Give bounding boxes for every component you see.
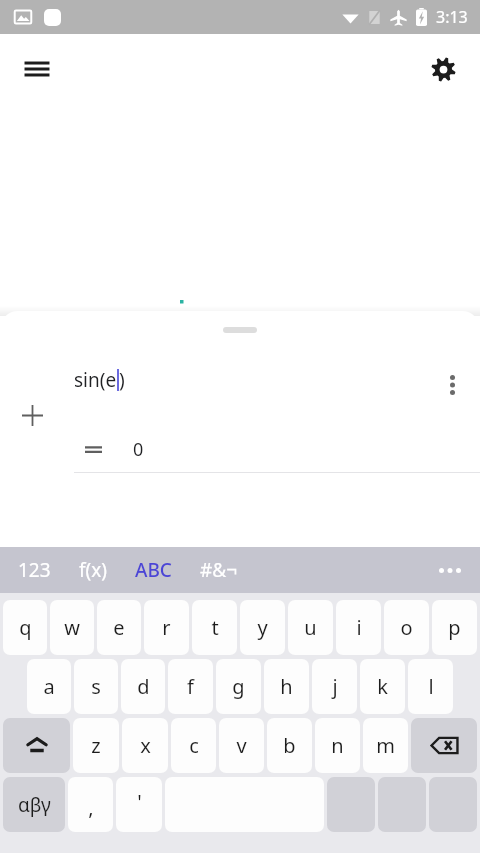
button[interactable]: ' [116,777,162,832]
staticText: m [376,732,395,759]
staticText: h [280,673,293,700]
button[interactable]: l [408,659,453,714]
button[interactable]: v [219,718,264,773]
button[interactable]: a [27,659,71,714]
staticText: s [91,673,101,700]
button[interactable]: c [171,718,216,773]
button[interactable]: k [360,659,405,714]
staticText: z [91,732,101,759]
staticText: j [332,673,338,700]
button[interactable]: r [144,600,189,655]
staticText: b [283,732,296,759]
staticText: c [189,732,199,759]
button[interactable]: ABC [127,547,180,593]
staticText: x [140,732,151,759]
staticText: 123 [18,557,51,583]
staticText: l [428,673,434,700]
staticText: o [400,614,413,641]
button[interactable]: y [240,600,285,655]
staticText: p [448,614,461,641]
button[interactable]: d [121,659,165,714]
button[interactable]: Settings [420,46,466,92]
button[interactable]: sin(e [74,367,125,393]
button[interactable]: w [50,600,94,655]
button[interactable]: n [315,718,360,773]
staticText: v [236,732,247,759]
staticText: e [113,614,125,641]
staticText: sin(e [74,367,117,393]
staticText: i [356,614,362,641]
button[interactable]: Open navigation menu [14,46,60,92]
button[interactable]: f [168,659,213,714]
button[interactable]: q [3,600,47,655]
button[interactable]: More keyboard options [428,548,472,592]
staticText: k [377,673,388,700]
button[interactable]: m [363,718,408,773]
staticText: q [19,614,32,641]
staticText: f [187,673,194,700]
staticText: 0 [133,437,144,462]
button[interactable]: j [312,659,357,714]
staticText: a [43,673,55,700]
button[interactable]: f(x) [71,547,115,593]
staticText: ABC [135,557,172,583]
staticText: ) [119,367,125,393]
staticText: u [304,614,317,641]
button[interactable]: g [216,659,261,714]
button[interactable]: h [264,659,309,714]
staticText: r [162,614,171,641]
button[interactable]: z [73,718,119,773]
button[interactable]: Expression options [430,363,474,407]
staticText: ' [137,788,142,815]
button[interactable]: Add expression [10,393,54,437]
button[interactable]: o [384,600,429,655]
button[interactable]: #&¬ [192,547,246,593]
button[interactable]: αβγ [3,777,65,832]
button[interactable]: s [74,659,118,714]
staticText: n [331,732,344,759]
button[interactable]: i [336,600,381,655]
staticText: y [257,614,268,641]
staticText: d [137,673,150,700]
staticText: g [232,673,245,700]
button[interactable]: Shift [3,718,70,773]
button[interactable]: u [288,600,333,655]
button[interactable]: , [68,777,113,832]
button[interactable]: x [122,718,168,773]
staticText: #&¬ [200,557,238,583]
staticText: t [211,614,219,641]
button[interactable]: t [192,600,237,655]
button[interactable]: e [97,600,141,655]
button[interactable]: Backspace [411,718,477,773]
button[interactable]: b [267,718,312,773]
button[interactable]: 123 [10,547,59,593]
staticText: f(x) [79,557,107,583]
staticText: , [88,794,94,821]
button[interactable]: p [432,600,477,655]
staticText: w [64,614,80,641]
staticText: αβγ [18,792,51,818]
staticText: 3:13 [436,6,468,28]
